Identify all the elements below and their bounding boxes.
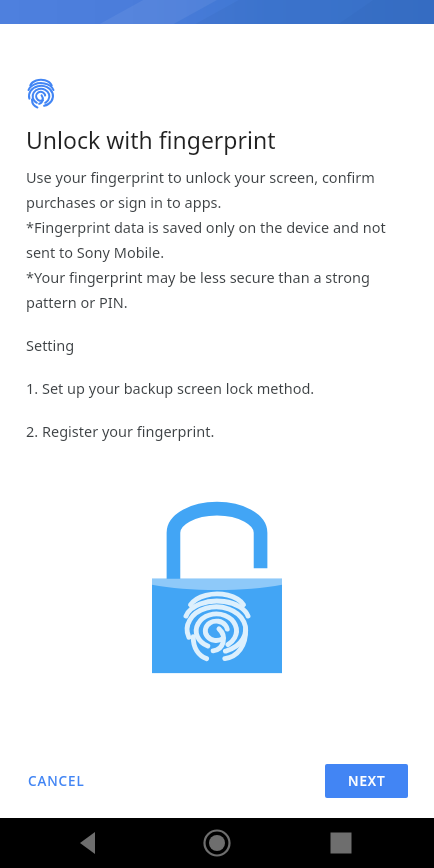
- staticText: Use your fingerprint to unlock your scre…: [26, 167, 408, 312]
- staticText: NEXT: [348, 772, 386, 790]
- staticText: Setting: [26, 335, 75, 355]
- staticText: 2. Register your fingerprint.: [26, 421, 215, 441]
- button[interactable]: CANCEL: [18, 764, 95, 798]
- button[interactable]: Home: [144, 818, 289, 868]
- button[interactable]: Back: [0, 818, 144, 868]
- staticText: CANCEL: [28, 772, 85, 790]
- staticText: 1. Set up your backup screen lock method…: [26, 378, 315, 398]
- button[interactable]: NEXT: [325, 764, 408, 798]
- staticText: Unlock with fingerprint: [26, 124, 276, 155]
- button[interactable]: Recent apps: [289, 818, 434, 868]
